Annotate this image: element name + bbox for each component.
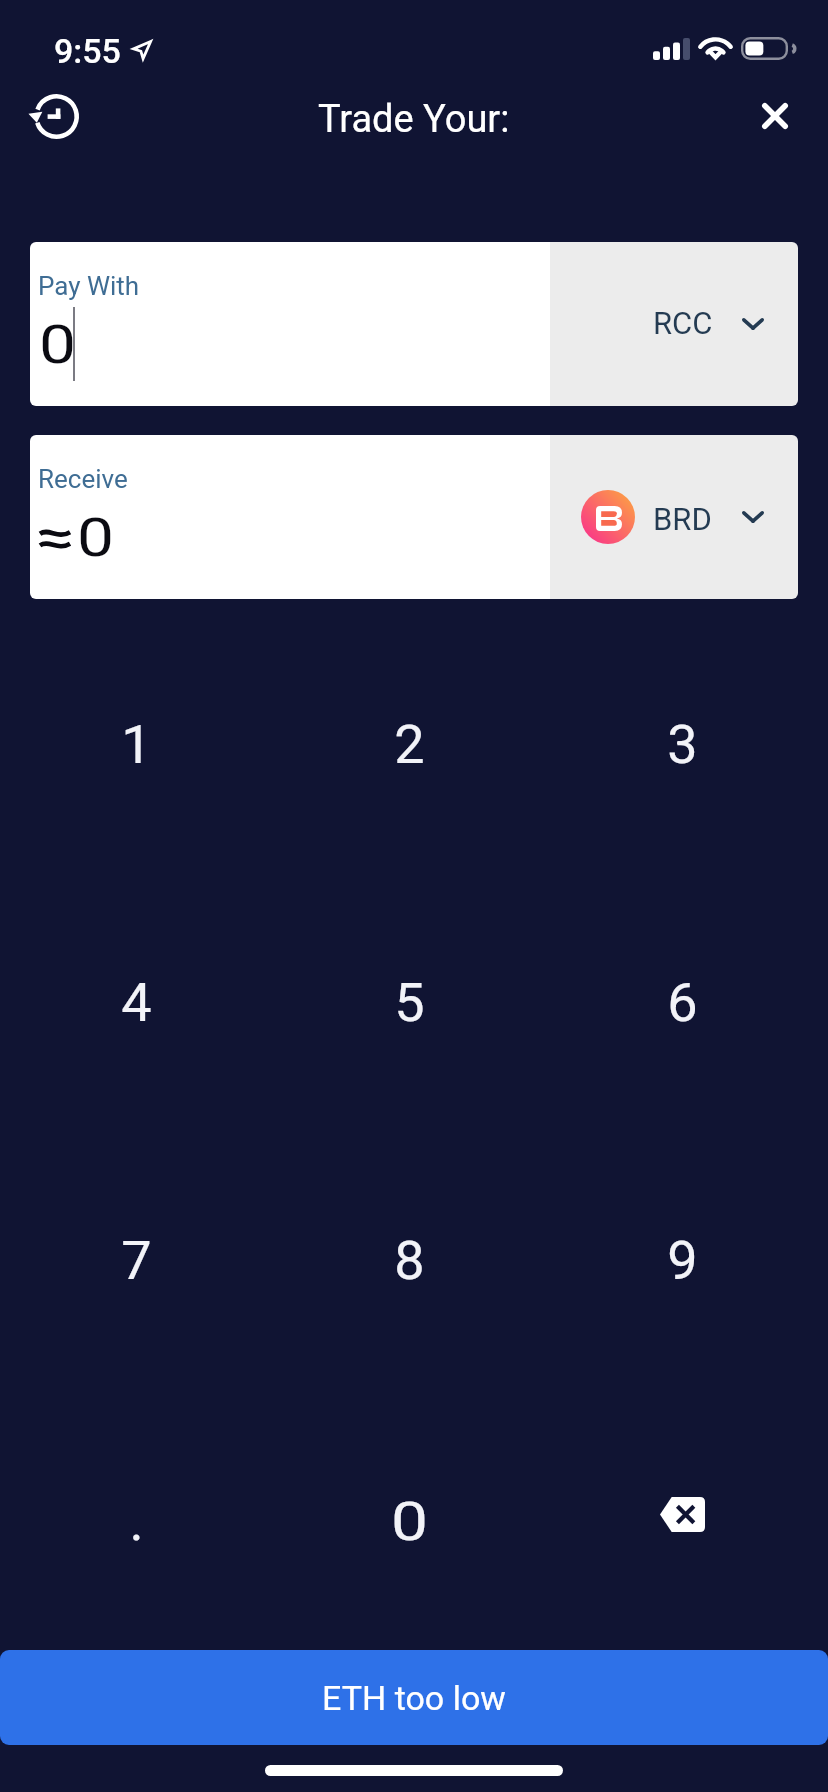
button[interactable]: Receive (30, 435, 550, 599)
staticText: 5 (394, 971, 425, 1034)
button[interactable]: 3 (567, 658, 797, 830)
staticText: 0 (391, 1490, 428, 1553)
staticText: 7 (121, 1229, 152, 1292)
button[interactable]: 2 (294, 658, 524, 830)
staticText: 2 (394, 713, 425, 776)
button[interactable]: 6 (567, 916, 797, 1088)
staticText: 9:55 (54, 31, 121, 71)
staticText: RCC (653, 305, 713, 341)
button[interactable]: 5 (294, 916, 524, 1088)
staticText: Receive (38, 464, 128, 494)
staticText: . (129, 1490, 144, 1553)
staticText: 0 (39, 313, 77, 376)
staticText: 3 (667, 713, 698, 776)
staticText: 0 (77, 506, 115, 569)
button[interactable]: 9 (567, 1174, 797, 1346)
button[interactable]: 4 (21, 916, 251, 1088)
staticText: ETH too low (322, 1678, 506, 1718)
button[interactable]: 8 (294, 1174, 524, 1346)
button[interactable]: 7 (21, 1174, 251, 1346)
button[interactable]: Close (742, 83, 808, 149)
button[interactable]: Transaction history (20, 80, 92, 152)
staticText: 4 (121, 971, 152, 1034)
button[interactable]: BRD (550, 435, 798, 599)
button[interactable]: ETH too low (0, 1650, 828, 1745)
staticText: 9 (667, 1229, 698, 1292)
button[interactable]: 1 (21, 658, 251, 830)
button[interactable]: Backspace (567, 1435, 797, 1607)
button[interactable]: 0 (294, 1435, 524, 1607)
staticText: 8 (394, 1229, 425, 1292)
staticText: 1 (121, 713, 152, 776)
button[interactable]: RCC (550, 242, 798, 406)
button[interactable]: Pay With (30, 242, 550, 406)
staticText: 6 (667, 971, 698, 1034)
staticText: Pay With (38, 271, 140, 301)
staticText: Trade Your: (318, 97, 510, 142)
button[interactable]: . (21, 1435, 251, 1607)
staticText: BRD (653, 501, 712, 537)
